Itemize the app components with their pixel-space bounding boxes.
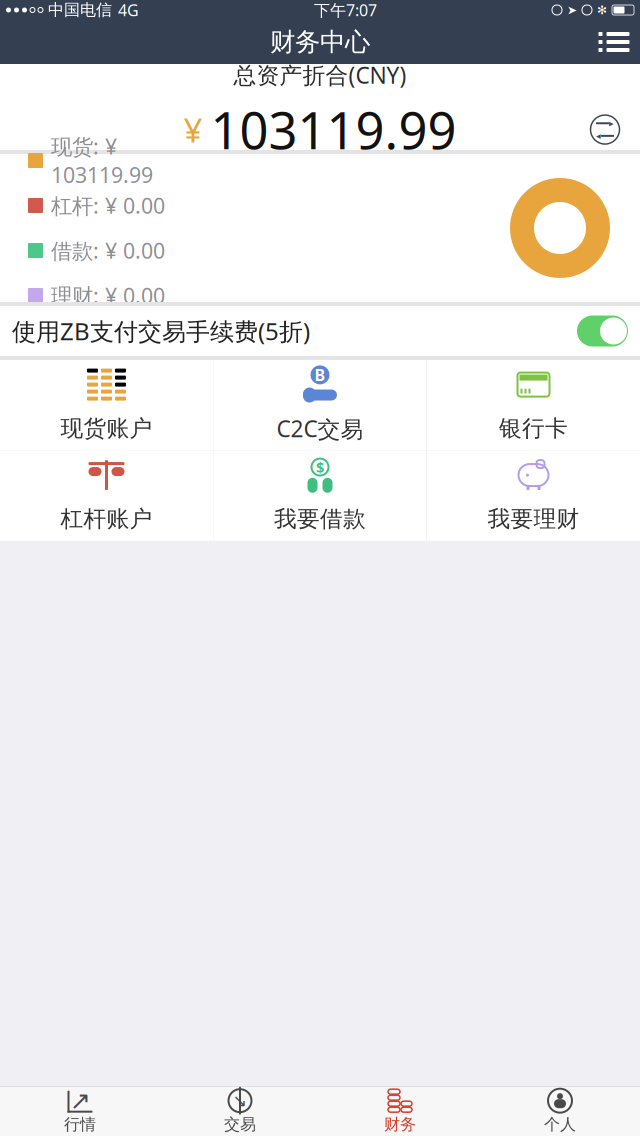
staticText: ↗: [69, 1086, 90, 1115]
staticText: 我要理财: [487, 505, 579, 533]
staticText: $: [316, 457, 324, 477]
staticText: 4G: [118, 0, 139, 21]
button[interactable]: 杠杆账户: [0, 450, 213, 540]
staticText: 个人: [544, 1115, 576, 1134]
staticText: B: [314, 364, 325, 385]
staticText: ◂: [596, 131, 601, 141]
button[interactable]: 个人: [480, 1087, 640, 1136]
staticText: 103119.99: [210, 96, 456, 163]
staticText: ➤: [567, 3, 577, 17]
staticText: ▸: [609, 118, 614, 129]
button[interactable]: ↘: [160, 1087, 320, 1136]
button[interactable]: 使用ZB支付交易手续费(5折): [0, 306, 640, 356]
button[interactable]: B: [213, 360, 426, 450]
staticText: C2C交易: [276, 413, 363, 444]
staticText: 理财: ¥ 0.00: [51, 281, 165, 310]
staticText: 财务: [384, 1115, 416, 1134]
staticText: 现货账户: [60, 415, 152, 442]
staticText: 现货: ¥ 103119.99: [51, 132, 153, 189]
button[interactable]: $: [213, 450, 426, 540]
staticText: ✻: [597, 3, 607, 17]
staticText: 下午7:07: [314, 0, 377, 21]
staticText: 我要借款: [274, 505, 366, 533]
staticText: 借款: ¥ 0.00: [51, 236, 165, 265]
staticText: 总资产折合(CNY): [233, 60, 406, 90]
button[interactable]: 我要理财: [427, 450, 640, 540]
staticText: 杠杆: ¥ 0.00: [51, 191, 165, 220]
staticText: 使用ZB支付交易手续费(5折): [12, 315, 310, 347]
staticText: 行情: [64, 1115, 96, 1134]
staticText: 中国电信: [48, 0, 112, 20]
staticText: ↘: [232, 1091, 247, 1110]
button[interactable]: Menu: [588, 20, 640, 64]
button[interactable]: 财务: [320, 1087, 480, 1136]
staticText: 财务中心: [270, 26, 370, 57]
staticText: 银行卡: [499, 415, 568, 442]
staticText: ¥: [183, 107, 202, 152]
button[interactable]: Currency exchange: [582, 107, 628, 153]
button[interactable]: 银行卡: [427, 360, 640, 450]
button[interactable]: 现货账户: [0, 360, 213, 450]
staticText: 杠杆账户: [60, 505, 152, 533]
button[interactable]: ↗: [0, 1087, 160, 1136]
staticText: 交易: [224, 1115, 256, 1134]
